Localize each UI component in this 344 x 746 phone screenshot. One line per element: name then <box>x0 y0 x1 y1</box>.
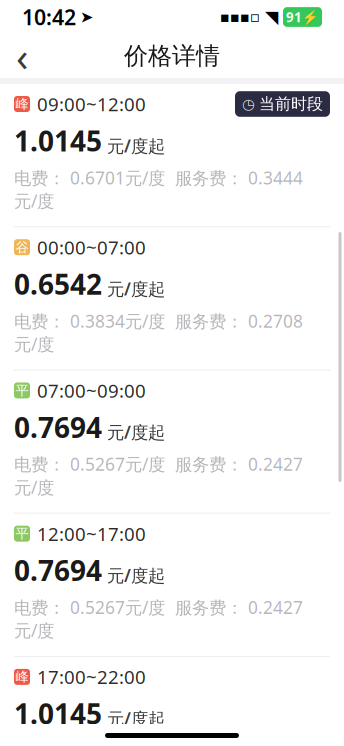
staticText: ‹ <box>16 29 28 82</box>
staticText: 91⚡ <box>286 8 319 26</box>
staticText: 当前时段 <box>259 94 323 114</box>
staticText: 0.7694 <box>14 552 102 589</box>
staticText: 电费： 0.5267元/度 服务费： 0.2427元/度 <box>14 453 303 499</box>
staticText: 17:00~22:00 <box>37 664 146 689</box>
staticText: 1.0145 <box>14 695 102 732</box>
staticText: 07:00~09:00 <box>37 378 146 403</box>
staticText: 元/度起 <box>107 134 165 157</box>
staticText: 元/度起 <box>107 421 165 444</box>
staticText: ▪▪▪▫ <box>220 9 260 25</box>
staticText: 电费： 0.5267元/度 服务费： 0.2427元/度 <box>14 596 303 642</box>
button[interactable]: 谷 <box>0 227 344 369</box>
staticText: 0.6542 <box>14 265 102 302</box>
staticText: 谷 <box>15 239 28 255</box>
staticText: 元/度起 <box>107 277 165 300</box>
staticText: 元/度起 <box>107 707 165 730</box>
staticText: 电费： 0.3834元/度 服务费： 0.2708元/度 <box>14 309 303 355</box>
staticText: 0.7694 <box>14 408 102 446</box>
button[interactable]: 平 <box>0 514 344 656</box>
staticText: ◥ <box>265 7 278 27</box>
staticText: 00:00~07:00 <box>37 235 146 260</box>
button[interactable]: 平 <box>0 370 344 513</box>
staticText: 12:00~17:00 <box>37 521 146 546</box>
staticText: 价格详情 <box>124 41 220 71</box>
staticText: ➤ <box>80 8 93 26</box>
staticText: ◷ <box>242 96 255 112</box>
staticText: 平 <box>15 525 28 542</box>
staticText: 电费： 0.6701元/度 服务费： 0.3444元/度 <box>14 166 303 212</box>
button[interactable]: 峰 <box>0 84 344 226</box>
button[interactable]: Back <box>0 34 44 78</box>
staticText: 平 <box>15 382 28 399</box>
staticText: 元/度起 <box>107 564 165 587</box>
button[interactable]: 峰 <box>0 657 344 746</box>
staticText: 峰 <box>15 669 28 685</box>
staticText: 1.0145 <box>14 122 102 159</box>
staticText: 09:00~12:00 <box>37 92 146 116</box>
staticText: 10:42 <box>22 3 76 31</box>
staticText: 峰 <box>15 96 28 112</box>
